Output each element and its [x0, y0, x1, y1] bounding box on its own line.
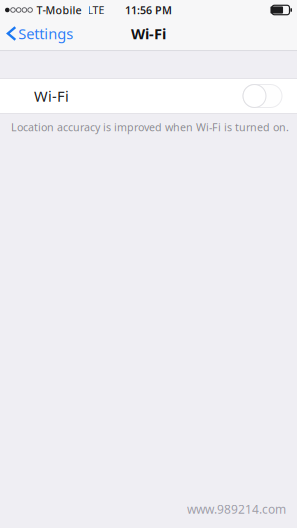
- button[interactable]: Wi-Fi, off: [243, 84, 282, 107]
- staticText: Location accuracy is improved when Wi-Fi…: [11, 120, 289, 134]
- staticText: www.989214.com: [187, 501, 286, 517]
- staticText: Wi-Fi: [131, 24, 166, 43]
- staticText: LTE: [87, 3, 104, 17]
- button[interactable]: Settings: [0, 18, 81, 52]
- staticText: T-Mobile: [36, 3, 81, 17]
- button[interactable]: Wi-Fi: [0, 79, 297, 113]
- staticText: Wi-Fi: [34, 86, 69, 106]
- staticText: 11:56 PM: [125, 3, 172, 17]
- staticText: Settings: [18, 24, 73, 43]
